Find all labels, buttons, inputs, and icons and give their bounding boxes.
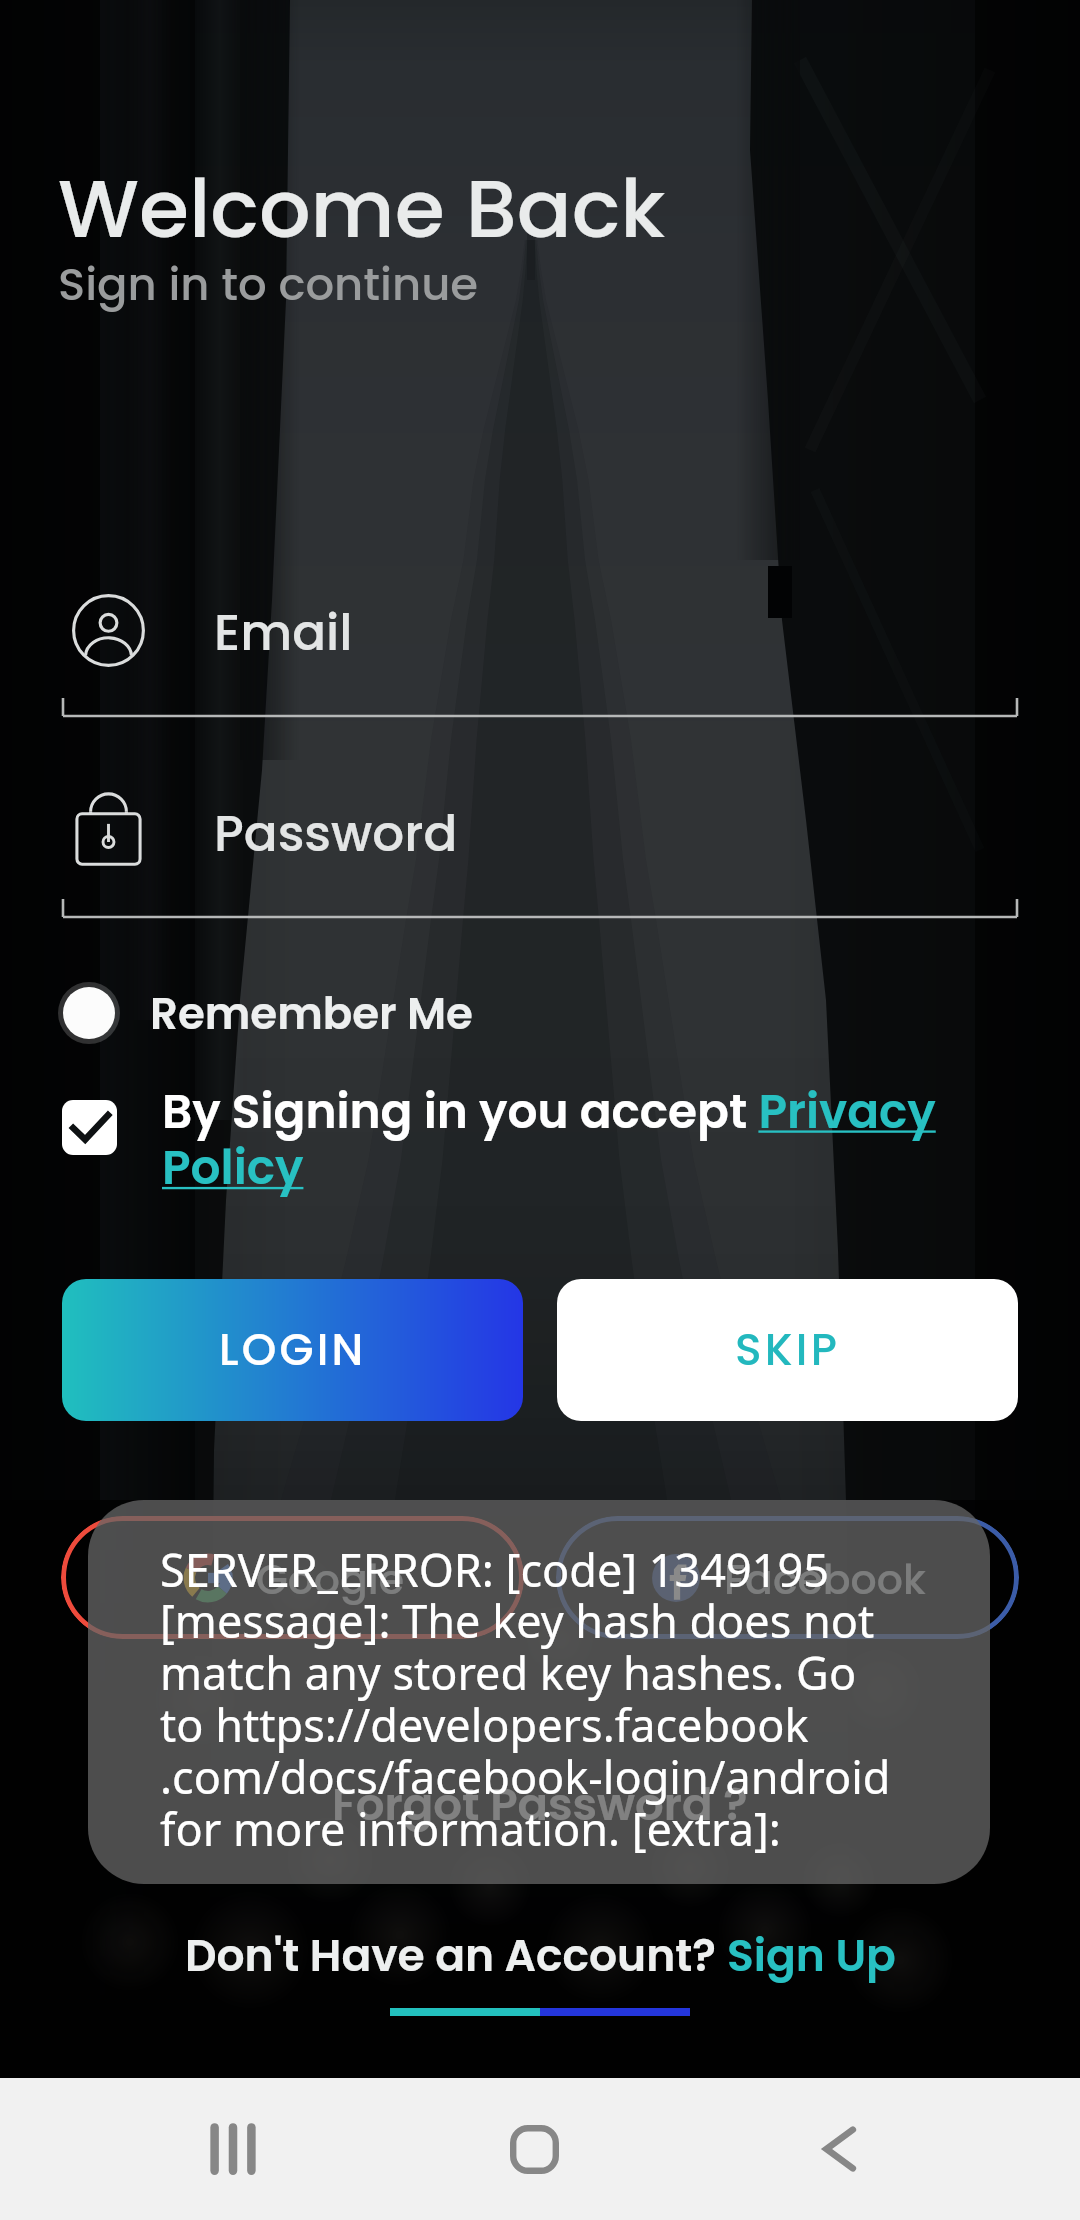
staticText: Facebook [724, 1551, 926, 1608]
button[interactable]: Password [72, 793, 145, 866]
staticText: Don't Have an Account? [185, 1925, 727, 1987]
staticText: Google [256, 1551, 404, 1608]
button[interactable]: Home [474, 2089, 594, 2209]
button[interactable]: LOGIN [62, 1279, 523, 1421]
button[interactable]: Don't Have an Account? [185, 1925, 896, 1987]
button[interactable]: Recents [173, 2089, 293, 2209]
staticText: Password [214, 799, 458, 869]
button[interactable]: SKIP [557, 1279, 1018, 1421]
button[interactable]: Forgot Password ? [332, 1773, 748, 1836]
button[interactable]: Back [777, 2089, 897, 2209]
button[interactable]: Remember Me [58, 978, 497, 1048]
staticText: Email [214, 598, 353, 668]
staticText: Welcome Back [58, 152, 666, 265]
button[interactable]: By Signing in you accept Privacy Policy [162, 1079, 952, 1201]
staticText: SERVER_ERROR: [code] 1349195 [message]: … [160, 1539, 891, 1860]
other: Email [72, 594, 145, 667]
button[interactable]: Google [61, 1516, 524, 1639]
staticText: Sign in to continue [58, 253, 479, 316]
button[interactable]: Facebook [556, 1516, 1019, 1639]
staticText: LOGIN [219, 1319, 367, 1381]
staticText: SKIP [735, 1319, 841, 1381]
staticText: Sign Up [727, 1925, 896, 1987]
other: Password [72, 793, 145, 866]
button[interactable]: Accept privacy policy [62, 1100, 117, 1155]
staticText: Remember Me [150, 983, 473, 1044]
button[interactable]: Email [72, 594, 145, 667]
